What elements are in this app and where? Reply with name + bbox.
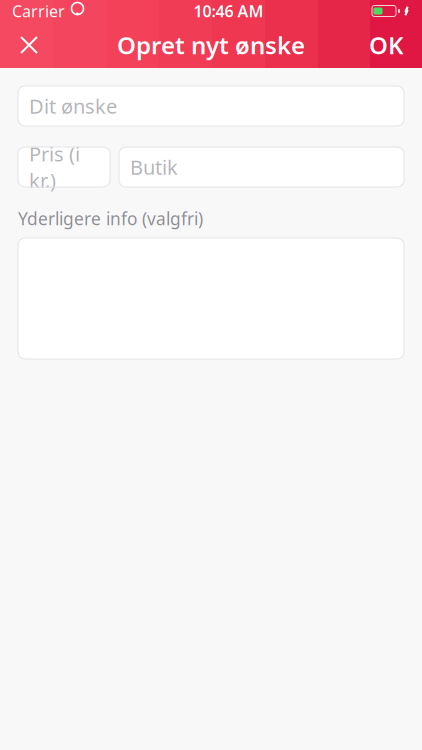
button[interactable]: Pris (i kr.) [18,147,110,187]
button[interactable]: Butik [119,147,404,187]
staticText: Yderligere info (valgfri) [18,207,203,230]
staticText: Opret nyt ønske [117,29,305,61]
staticText: 10:46 AM [193,0,263,22]
staticText: Butik [130,154,178,180]
staticText: Carrier [12,0,65,22]
staticText: OK [369,29,404,61]
button[interactable]: Dit ønske [18,86,404,126]
button[interactable]: OK [357,22,416,68]
staticText: Dit ønske [29,93,117,119]
staticText: Pris (i kr.) [29,140,80,193]
button[interactable]: Close [6,22,52,68]
